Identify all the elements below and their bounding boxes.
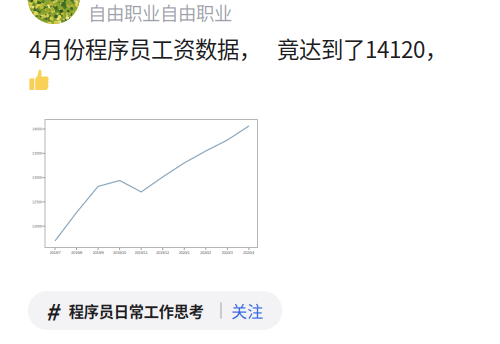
staticText: 2019/12 <box>156 250 169 255</box>
staticText: 2019/8 <box>71 250 82 255</box>
staticText: 2020/4 <box>243 250 254 255</box>
staticText: 程序员日常工作思考 <box>69 299 204 321</box>
staticText: 2019/7 <box>49 250 60 255</box>
staticText: 12500 <box>32 200 42 204</box>
staticText: 关注 <box>231 299 263 322</box>
button[interactable]: # <box>28 291 282 330</box>
button[interactable]: 自由职业自由职业 <box>88 0 232 26</box>
staticText: 2020/1 <box>178 250 189 255</box>
staticText: 13500 <box>32 151 42 155</box>
staticText: 2019/9 <box>92 250 103 255</box>
staticText: 2020/2 <box>200 250 211 255</box>
staticText: 12000 <box>32 224 42 228</box>
staticText: 14000 <box>32 127 42 131</box>
staticText: 自由职业自由职业 <box>88 0 232 26</box>
staticText: 2020/3 <box>221 250 232 255</box>
staticText: 2019/11 <box>134 250 147 255</box>
staticText: 2019/10 <box>113 250 126 255</box>
staticText: # <box>46 294 59 327</box>
staticText: 4月份程序员工资数据， 竟达到了14120， <box>29 32 447 64</box>
staticText: 13000 <box>32 176 42 180</box>
